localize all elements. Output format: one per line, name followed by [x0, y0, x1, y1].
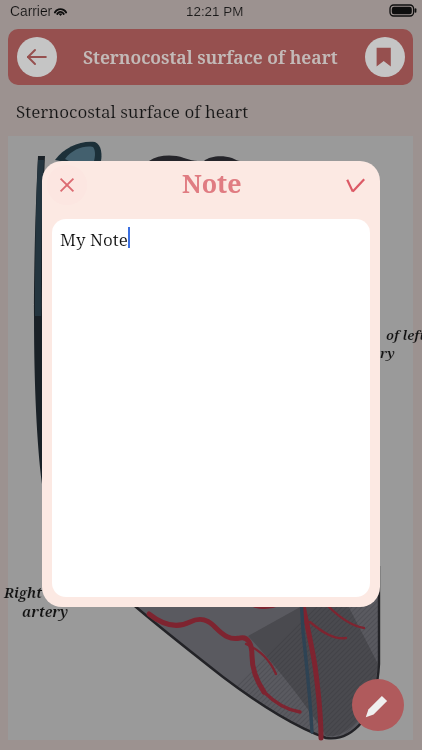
button[interactable]: My Note [52, 219, 370, 597]
staticText: Note [182, 166, 242, 200]
staticText: Right c [4, 583, 54, 602]
button[interactable]: Save [334, 161, 374, 201]
staticText: Sternocostal surface of heart [16, 100, 249, 123]
staticText: Carrier [10, 4, 53, 19]
button[interactable]: Close [47, 165, 87, 205]
staticText: Sternocostal surface of heart [83, 45, 338, 69]
staticText: of left [386, 326, 422, 344]
button[interactable]: Back [17, 37, 57, 77]
staticText: My Note [60, 228, 128, 251]
button[interactable]: Bookmark [365, 37, 405, 77]
staticText: ry [380, 344, 395, 362]
staticText: 12:21 PM [186, 4, 244, 19]
staticText: artery [22, 602, 69, 621]
button[interactable]: Edit note [352, 679, 404, 731]
